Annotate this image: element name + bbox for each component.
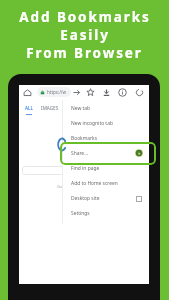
button[interactable]: Page info <box>118 88 127 97</box>
staticText: Easily <box>60 26 110 44</box>
button[interactable]: Reload <box>135 88 144 97</box>
button[interactable]: Home <box>23 88 32 97</box>
button[interactable]: Find in page <box>62 161 149 176</box>
button[interactable]: Desktop site <box>62 191 149 206</box>
staticText: Share... <box>71 150 89 157</box>
button[interactable]: Settings <box>62 206 149 221</box>
staticText: Desktop site <box>71 195 100 202</box>
button[interactable]: Add to Home screen <box>62 176 149 191</box>
staticText: IMAGES <box>41 105 59 111</box>
button[interactable]: https://w <box>37 87 71 97</box>
staticText: ALL <box>25 105 33 111</box>
staticText: New tab <box>71 105 91 112</box>
staticText: Find in page <box>71 165 100 172</box>
button[interactable]: Download <box>102 88 111 97</box>
button[interactable]: Bookmarks <box>62 131 149 146</box>
staticText: From Browser <box>26 44 143 62</box>
button[interactable]: Forward <box>72 88 81 97</box>
staticText: https://w <box>47 89 67 95</box>
button[interactable] <box>22 166 94 175</box>
staticText: Add Bookmarks <box>19 8 151 26</box>
staticText: Settings <box>71 210 90 217</box>
staticText: Add to Home screen <box>71 180 118 187</box>
button[interactable]: New incognito tab <box>62 116 149 131</box>
button[interactable]: Share... <box>62 146 149 161</box>
staticText: New incognito tab <box>71 120 113 127</box>
button[interactable] <box>60 142 156 165</box>
button[interactable]: Bookmark <box>86 88 95 97</box>
staticText: Bookmarks <box>71 135 97 142</box>
button[interactable]: New tab <box>62 101 149 116</box>
staticText: Google Search <box>57 184 85 189</box>
